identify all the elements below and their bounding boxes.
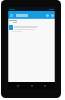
button[interactable]: Search xyxy=(45,11,50,19)
button[interactable]: Navigate up xyxy=(9,11,14,19)
button[interactable]: Home xyxy=(28,82,36,89)
button[interactable]: More options xyxy=(50,11,55,19)
button[interactable]: Recent apps xyxy=(41,82,49,89)
button[interactable]: Back xyxy=(14,82,22,89)
